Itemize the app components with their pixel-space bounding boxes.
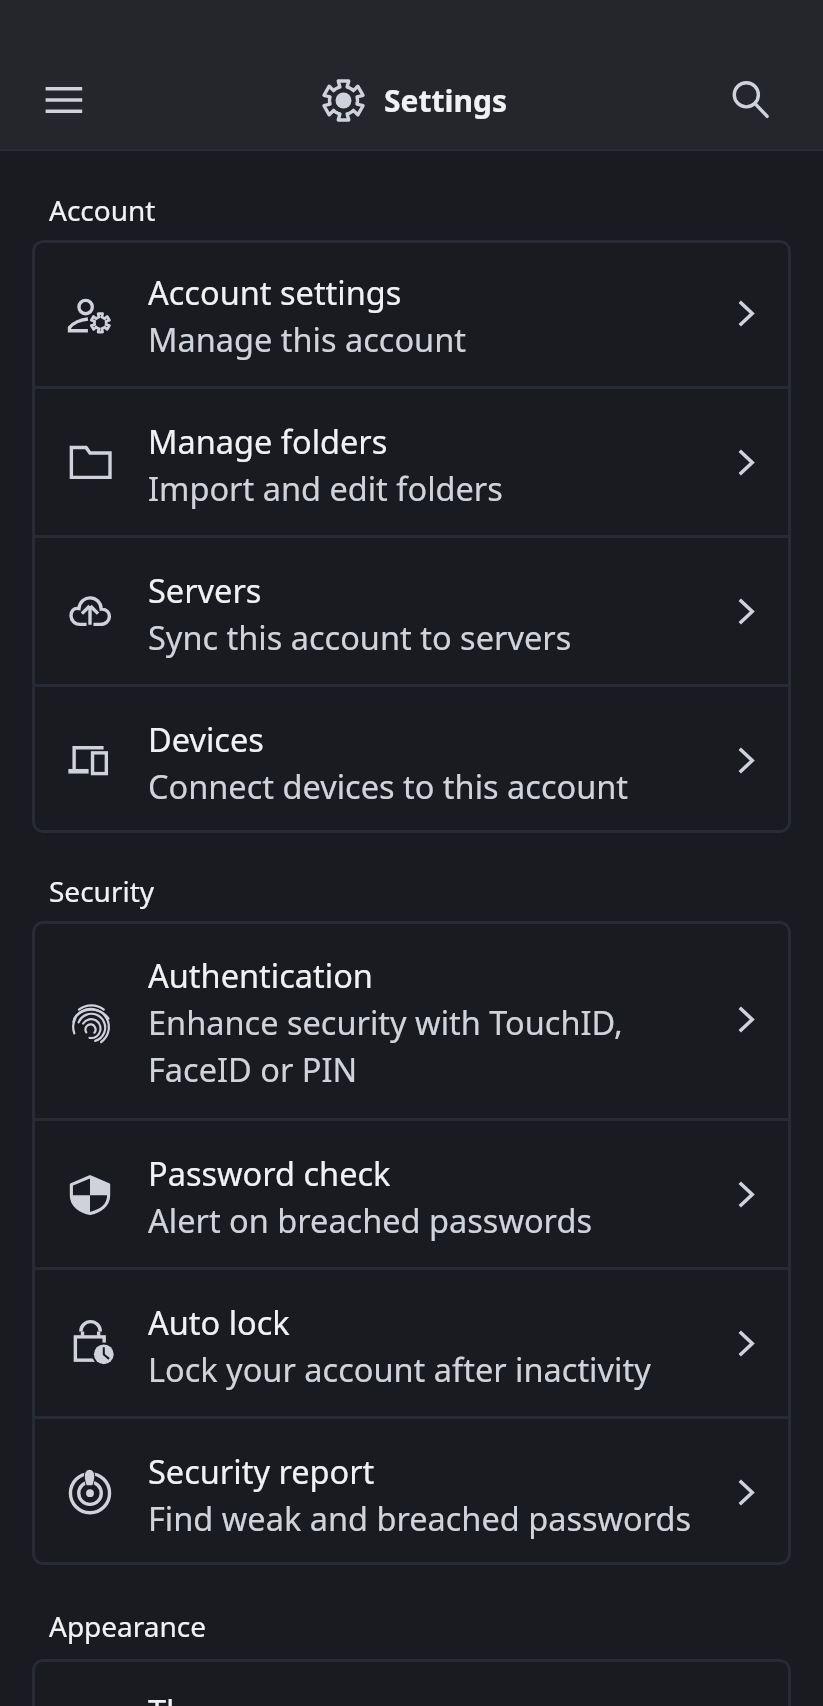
staticText: Theme: [148, 1689, 254, 1706]
staticText: Account settings: [148, 270, 402, 314]
button[interactable]: Password check: [32, 1121, 791, 1267]
staticText: Auto lock: [148, 1300, 290, 1344]
staticText: Manage this account: [148, 317, 467, 361]
button[interactable]: Menu: [28, 51, 100, 149]
button[interactable]: Theme: [32, 1659, 791, 1706]
button[interactable]: Servers: [32, 538, 791, 684]
staticText: Import and edit folders: [148, 466, 503, 510]
staticText: Appearance: [49, 1607, 207, 1645]
staticText: Lock your account after inactivity: [148, 1347, 651, 1391]
staticText: Password check: [148, 1151, 391, 1195]
staticText: Enhance security with TouchID, FaceID or…: [148, 1000, 701, 1091]
button[interactable]: Devices: [32, 687, 791, 833]
staticText: Alert on breached passwords: [148, 1198, 592, 1242]
staticText: Find weak and breached passwords: [148, 1496, 692, 1540]
button[interactable]: Manage folders: [32, 389, 791, 535]
staticText: Authentication: [148, 953, 373, 997]
staticText: Settings: [384, 80, 507, 121]
staticText: Account: [49, 191, 156, 229]
staticText: Security report: [148, 1449, 375, 1493]
button[interactable]: Authentication: [32, 921, 791, 1118]
button[interactable]: Account settings: [32, 240, 791, 386]
staticText: Servers: [148, 568, 262, 612]
button[interactable]: Auto lock: [32, 1270, 791, 1416]
staticText: Connect devices to this account: [148, 764, 629, 808]
button[interactable]: Search: [715, 51, 787, 149]
staticText: Sync this account to servers: [148, 615, 572, 659]
button[interactable]: Security report: [32, 1419, 791, 1565]
staticText: Security: [49, 872, 155, 910]
staticText: Devices: [148, 717, 264, 761]
staticText: Manage folders: [148, 419, 388, 463]
